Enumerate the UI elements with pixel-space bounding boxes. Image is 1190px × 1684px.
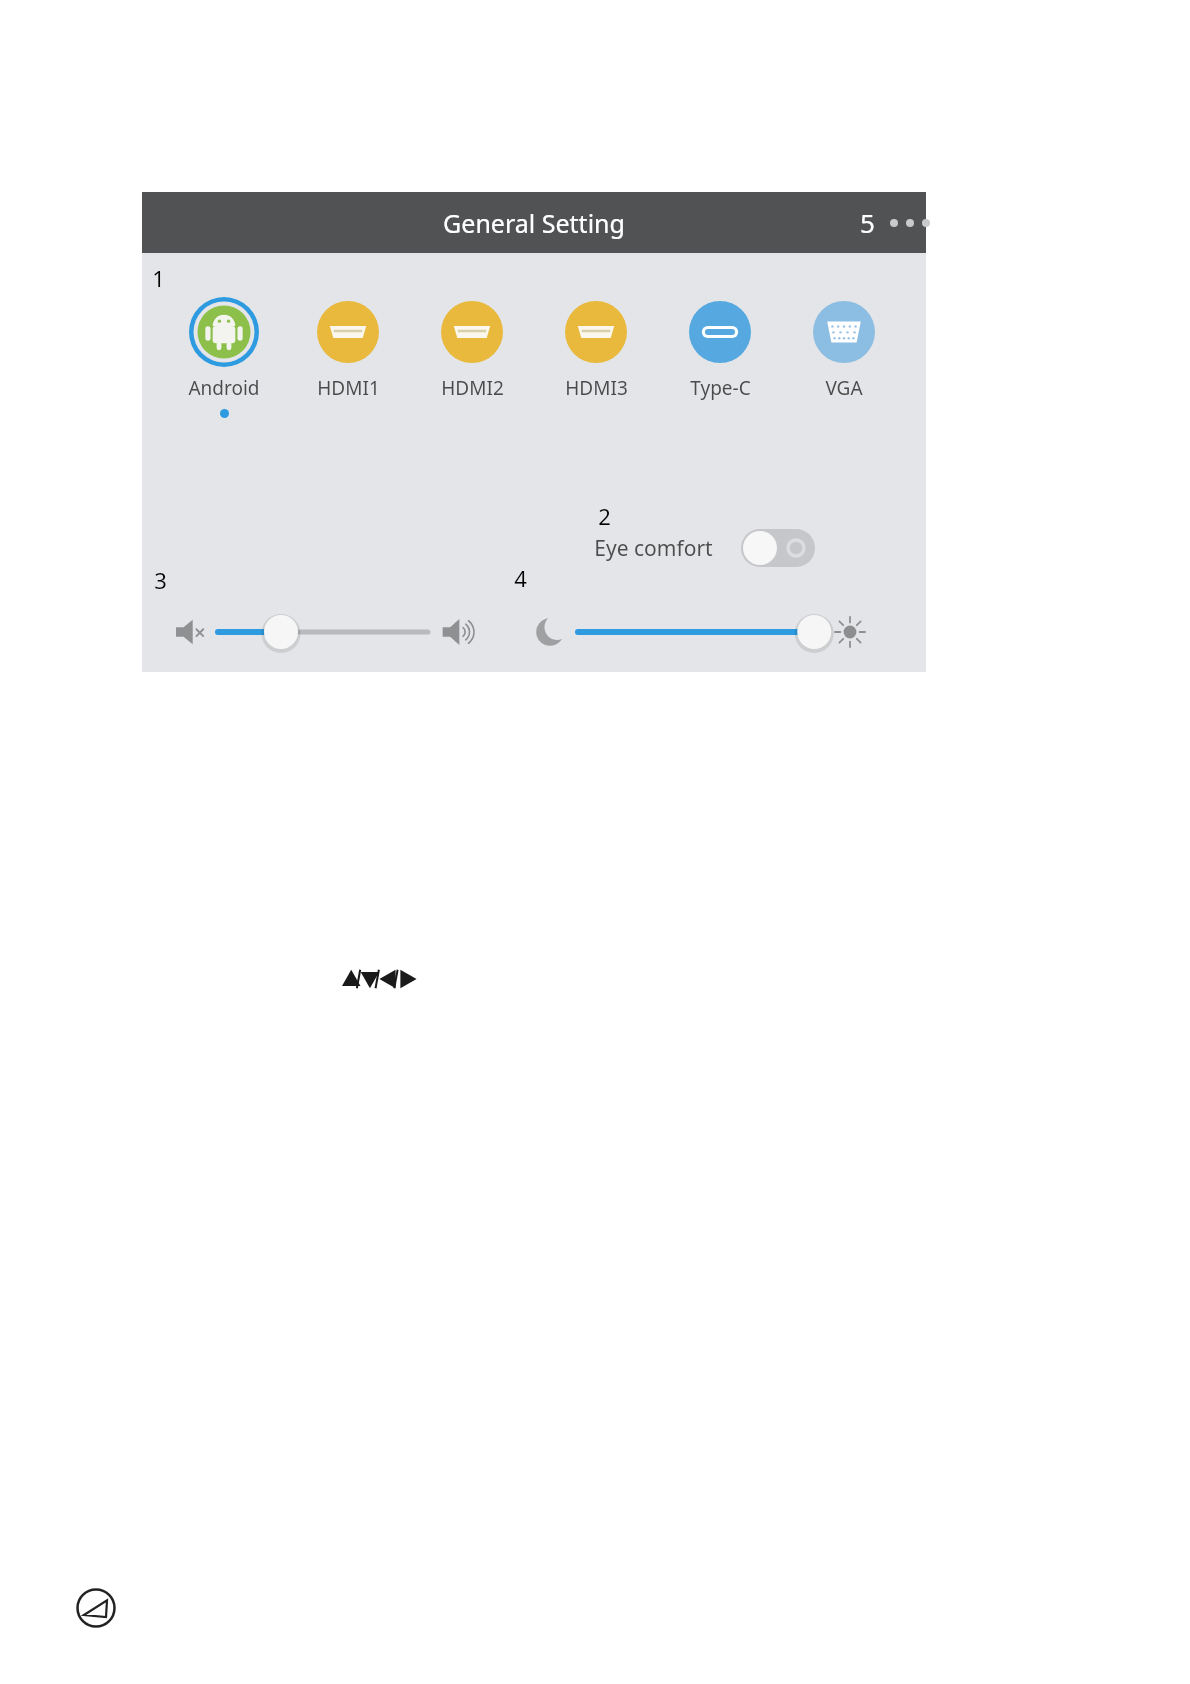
- staticText: 4: [514, 563, 527, 593]
- button[interactable]: HDMI1: [300, 295, 396, 411]
- staticText: General Setting: [443, 206, 625, 240]
- button[interactable]: Mute: [170, 611, 212, 653]
- staticText: Android: [188, 375, 260, 401]
- button[interactable]: [578, 609, 828, 655]
- staticText: 5: [860, 205, 875, 240]
- staticText: Type-C: [690, 375, 751, 401]
- button[interactable]: [218, 609, 428, 655]
- staticText: HDMI2: [441, 375, 504, 401]
- staticText: 3: [154, 565, 167, 595]
- staticText: 2: [598, 501, 611, 531]
- button[interactable]: HDMI2: [424, 295, 520, 411]
- button[interactable]: HDMI3: [548, 295, 644, 411]
- button[interactable]: Eye comfort toggle: [741, 529, 815, 567]
- staticText: Eye comfort: [594, 534, 713, 563]
- button[interactable]: Type-C: [672, 295, 768, 411]
- button[interactable]: Android: [176, 295, 272, 420]
- staticText: HDMI1: [317, 375, 380, 401]
- button[interactable]: More options: [884, 209, 936, 237]
- staticText: HDMI3: [565, 375, 628, 401]
- staticText: VGA: [825, 375, 863, 401]
- button[interactable]: Volume up: [438, 611, 480, 653]
- button[interactable]: Dim: [530, 612, 570, 652]
- button[interactable]: VGA: [796, 295, 892, 411]
- button[interactable]: Brighten: [830, 612, 870, 652]
- staticText: 1: [152, 263, 165, 293]
